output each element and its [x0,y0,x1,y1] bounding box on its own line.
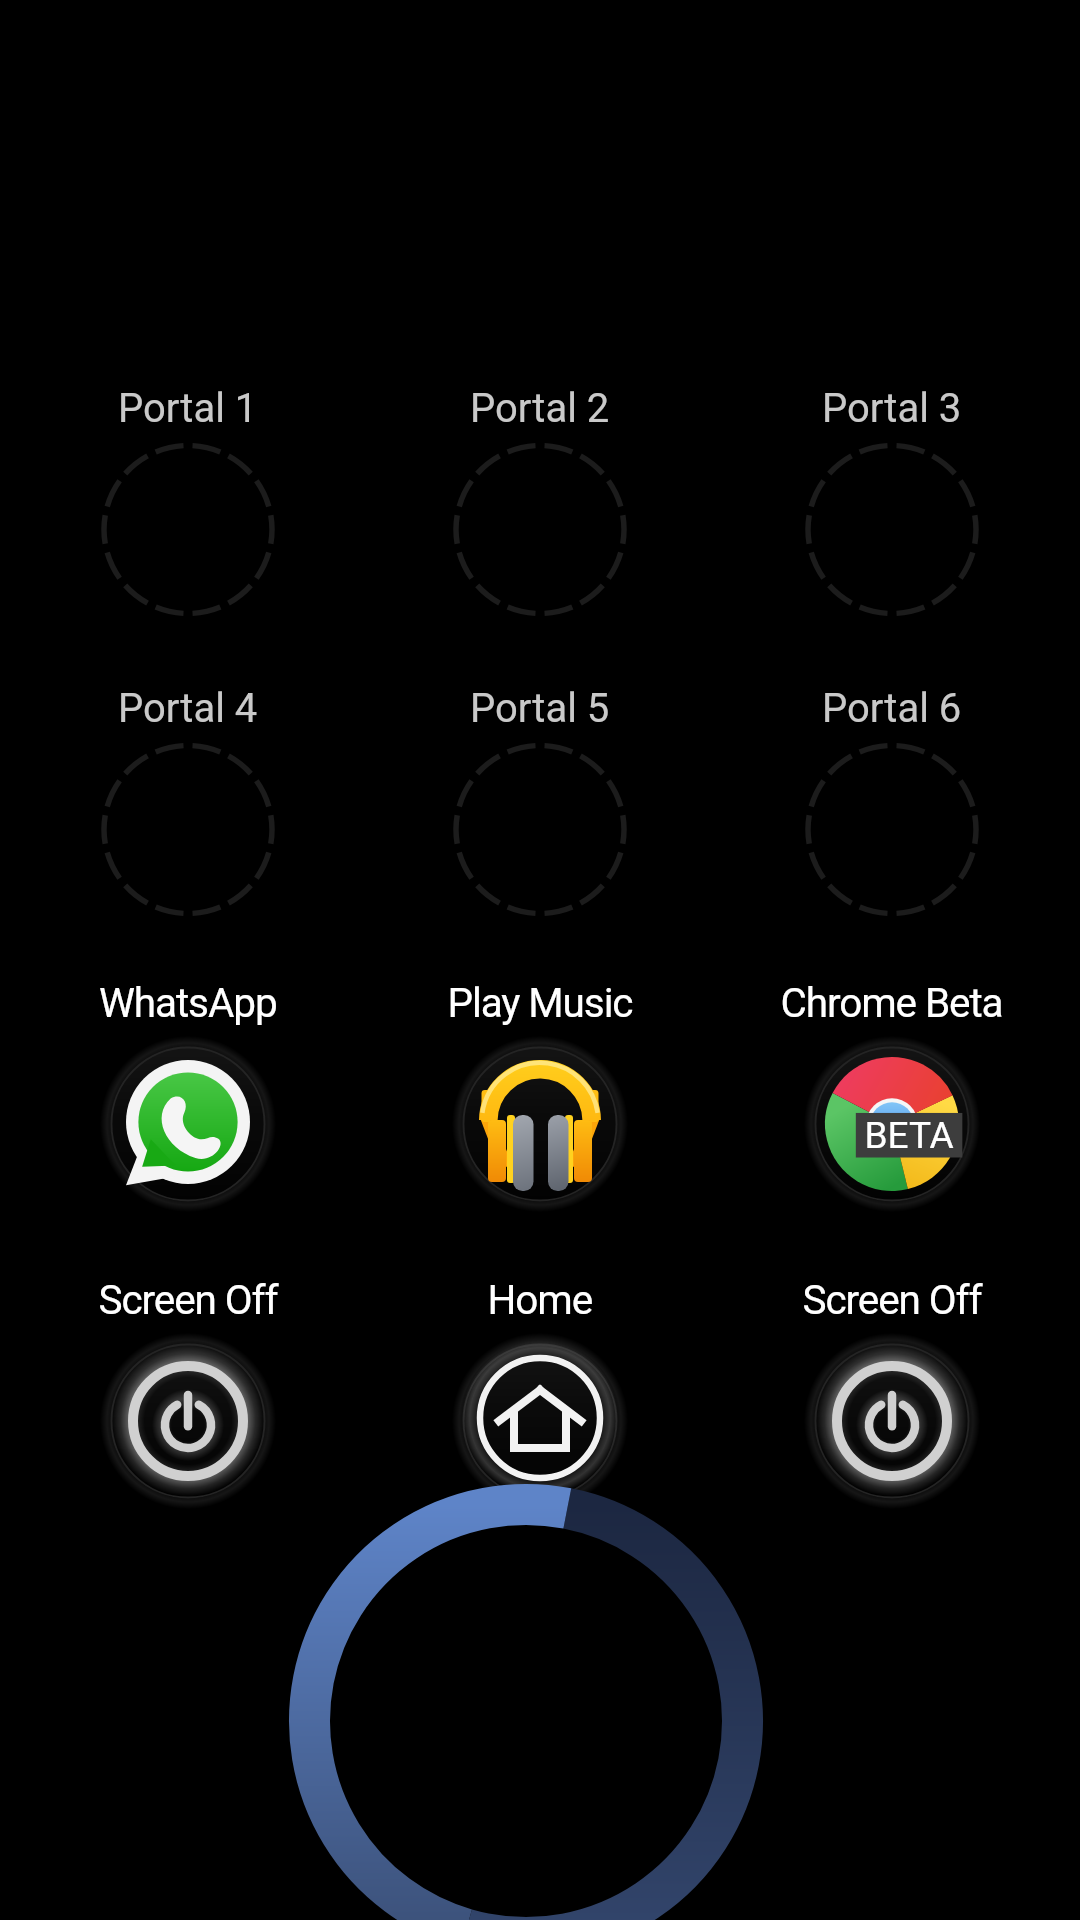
button[interactable]: Portal 1 [38,380,338,650]
button[interactable]: Portal 2 [390,380,690,650]
button[interactable]: Home [390,1271,690,1541]
button[interactable]: Portal 4 [38,680,338,950]
button[interactable]: Play Music [390,974,690,1244]
button[interactable]: WhatsApp [38,974,338,1244]
button[interactable]: Chrome Beta [742,974,1042,1244]
button[interactable]: Screen Off [742,1271,1042,1541]
button[interactable]: Screen Off [38,1271,338,1541]
button[interactable]: Portal 6 [742,680,1042,950]
button[interactable]: Portal 5 [390,680,690,950]
button[interactable]: Portal 3 [742,380,1042,650]
